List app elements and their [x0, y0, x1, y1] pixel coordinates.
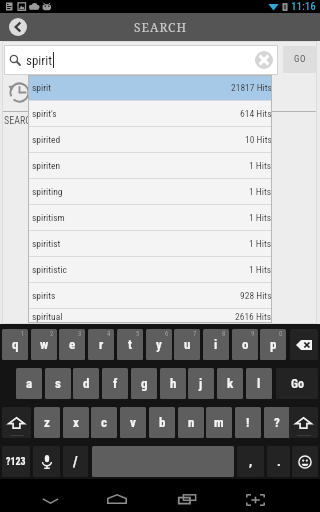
button[interactable]: r: [88, 329, 114, 360]
button[interactable]: s: [45, 368, 71, 399]
staticText: v: [130, 415, 136, 430]
button[interactable]: m: [206, 407, 232, 438]
staticText: m: [214, 415, 224, 430]
staticText: spiritual: [32, 311, 63, 322]
staticText: r: [99, 337, 104, 352]
staticText: 1 Hits: [249, 186, 272, 197]
button[interactable]: ?: [264, 407, 290, 438]
staticText: spiriten: [32, 160, 61, 171]
button[interactable]: u: [174, 329, 200, 360]
staticText: 0: [279, 330, 283, 338]
button[interactable]: c: [91, 407, 117, 438]
button[interactable]: Clear search: [255, 51, 273, 69]
button[interactable]: Shift: [2, 407, 31, 438]
button[interactable]: GO: [283, 46, 316, 73]
button[interactable]: q: [2, 329, 28, 360]
staticText: p: [270, 337, 277, 352]
staticText: k: [227, 376, 234, 391]
staticText: spirited: [32, 134, 61, 145]
button[interactable]: spirits: [28, 283, 272, 308]
staticText: l: [257, 376, 261, 391]
button[interactable]: spirited: [28, 127, 272, 152]
staticText: 614 Hits: [240, 108, 272, 119]
staticText: spiritism: [32, 212, 65, 223]
button[interactable]: spiritism: [28, 205, 272, 230]
button[interactable]: a: [16, 368, 42, 399]
staticText: spirit: [32, 82, 52, 93]
staticText: .: [277, 454, 281, 469]
button[interactable]: z: [34, 407, 60, 438]
staticText: SEARCH HISTORY: [4, 115, 75, 127]
button[interactable]: v: [120, 407, 146, 438]
staticText: 2: [50, 330, 54, 338]
button[interactable]: f: [102, 368, 128, 399]
button[interactable]: y: [146, 329, 172, 360]
staticText: z: [44, 415, 50, 430]
button[interactable]: x: [63, 407, 89, 438]
button[interactable]: spirit: [4, 45, 278, 75]
button[interactable]: b: [149, 407, 175, 438]
button[interactable]: o: [232, 329, 258, 360]
button[interactable]: j: [188, 368, 214, 399]
staticText: t: [128, 337, 132, 352]
staticText: 9: [251, 330, 255, 338]
staticText: 6: [165, 330, 169, 338]
button[interactable]: l: [246, 368, 272, 399]
staticText: 1 Hits: [249, 212, 272, 223]
button[interactable]: spiritistic: [28, 257, 272, 282]
button[interactable]: e: [59, 329, 85, 360]
button[interactable]: ,: [237, 446, 264, 477]
staticText: u: [184, 337, 191, 352]
button[interactable]: spiriten: [28, 153, 272, 178]
button[interactable]: Back: [26, 486, 74, 512]
staticText: spiritistic: [32, 264, 67, 275]
staticText: b: [159, 415, 166, 430]
button[interactable]: spiritist: [28, 231, 272, 256]
button[interactable]: Home: [93, 484, 141, 512]
staticText: 8: [222, 330, 226, 338]
button[interactable]: i: [203, 329, 229, 360]
staticText: spirits: [32, 290, 56, 301]
staticText: g: [141, 376, 148, 391]
staticText: o: [242, 337, 249, 352]
button[interactable]: Recent apps: [163, 484, 211, 512]
staticText: 21817 Hits: [231, 82, 272, 93]
button[interactable]: g: [131, 368, 157, 399]
button[interactable]: Back: [9, 18, 27, 36]
button[interactable]: Shift: [289, 407, 318, 438]
button[interactable]: w: [31, 329, 57, 360]
button[interactable]: Emoji: [292, 446, 318, 477]
button[interactable]: n: [178, 407, 204, 438]
staticText: 1 Hits: [249, 238, 272, 249]
staticText: q: [12, 337, 19, 352]
button[interactable]: t: [117, 329, 143, 360]
button[interactable]: ?123: [2, 446, 30, 477]
staticText: d: [83, 376, 90, 391]
staticText: a: [26, 376, 33, 391]
staticText: 1 Hits: [249, 160, 272, 171]
staticText: 10 Hits: [245, 134, 272, 145]
staticText: ?123: [6, 456, 26, 468]
button[interactable]: .: [267, 446, 290, 477]
button[interactable]: Expand: [231, 485, 279, 512]
button[interactable]: Go: [276, 368, 318, 399]
button[interactable]: k: [217, 368, 243, 399]
staticText: !: [246, 415, 250, 430]
staticText: y: [156, 337, 162, 352]
staticText: Go: [291, 377, 304, 391]
button[interactable]: h: [160, 368, 186, 399]
button[interactable]: spiritual: [28, 309, 272, 323]
button[interactable]: /: [63, 446, 88, 477]
button[interactable]: !: [235, 407, 261, 438]
button[interactable]: Voice input: [33, 446, 60, 477]
button[interactable]: p: [260, 329, 286, 360]
staticText: h: [170, 376, 177, 391]
staticText: j: [199, 376, 203, 391]
button[interactable]: spirit: [28, 75, 272, 100]
button[interactable]: spiriting: [28, 179, 272, 204]
button[interactable]: d: [73, 368, 99, 399]
button[interactable]: Backspace: [290, 329, 318, 360]
staticText: spiritist: [32, 238, 61, 249]
button[interactable]: spirit's: [28, 101, 272, 126]
